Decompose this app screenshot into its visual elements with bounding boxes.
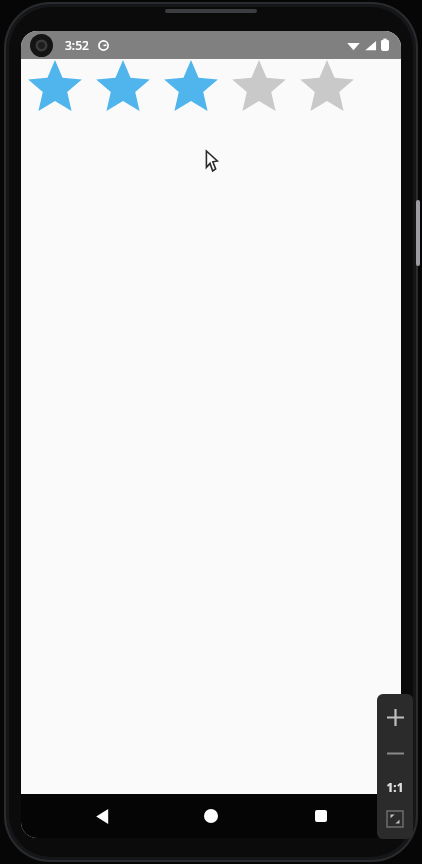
staticText: 3:52 [65, 37, 89, 53]
button[interactable]: Rate 3 stars [157, 59, 225, 123]
button[interactable]: Rate 4 stars [225, 59, 293, 123]
button[interactable]: Rate 1 stars [21, 59, 89, 123]
button[interactable]: Home [182, 794, 240, 838]
button[interactable]: Zoom out [380, 738, 410, 768]
button[interactable]: Recent apps [292, 794, 350, 838]
button[interactable]: Rate 5 stars [293, 59, 361, 123]
staticText: 1:1 [386, 779, 404, 795]
button[interactable]: Fit to screen [380, 804, 410, 834]
button[interactable]: 1:1 [378, 774, 412, 800]
button[interactable]: Rate 2 stars [89, 59, 157, 123]
button[interactable]: Zoom in [380, 702, 410, 732]
button[interactable]: Back [73, 794, 131, 838]
